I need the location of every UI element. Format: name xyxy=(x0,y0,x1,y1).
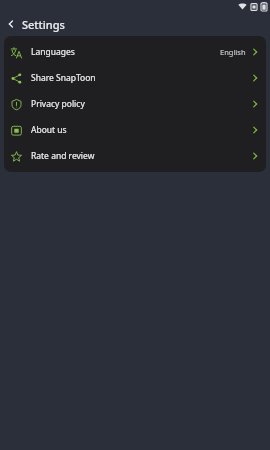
staticText: Languages xyxy=(31,46,75,58)
staticText: Share SnapToon xyxy=(31,72,96,84)
button[interactable]: Share SnapToon xyxy=(4,65,266,91)
button[interactable]: About us xyxy=(4,117,266,143)
staticText: English xyxy=(220,47,246,57)
button[interactable]: Rate and review xyxy=(4,143,266,169)
staticText: Rate and review xyxy=(31,150,95,162)
button[interactable]: Languages xyxy=(4,39,266,65)
staticText: About us xyxy=(31,124,67,136)
button[interactable]: Privacy policy xyxy=(4,91,266,117)
button[interactable]: Back xyxy=(0,13,22,35)
staticText: Settings xyxy=(22,17,65,32)
staticText: Privacy policy xyxy=(31,98,85,110)
